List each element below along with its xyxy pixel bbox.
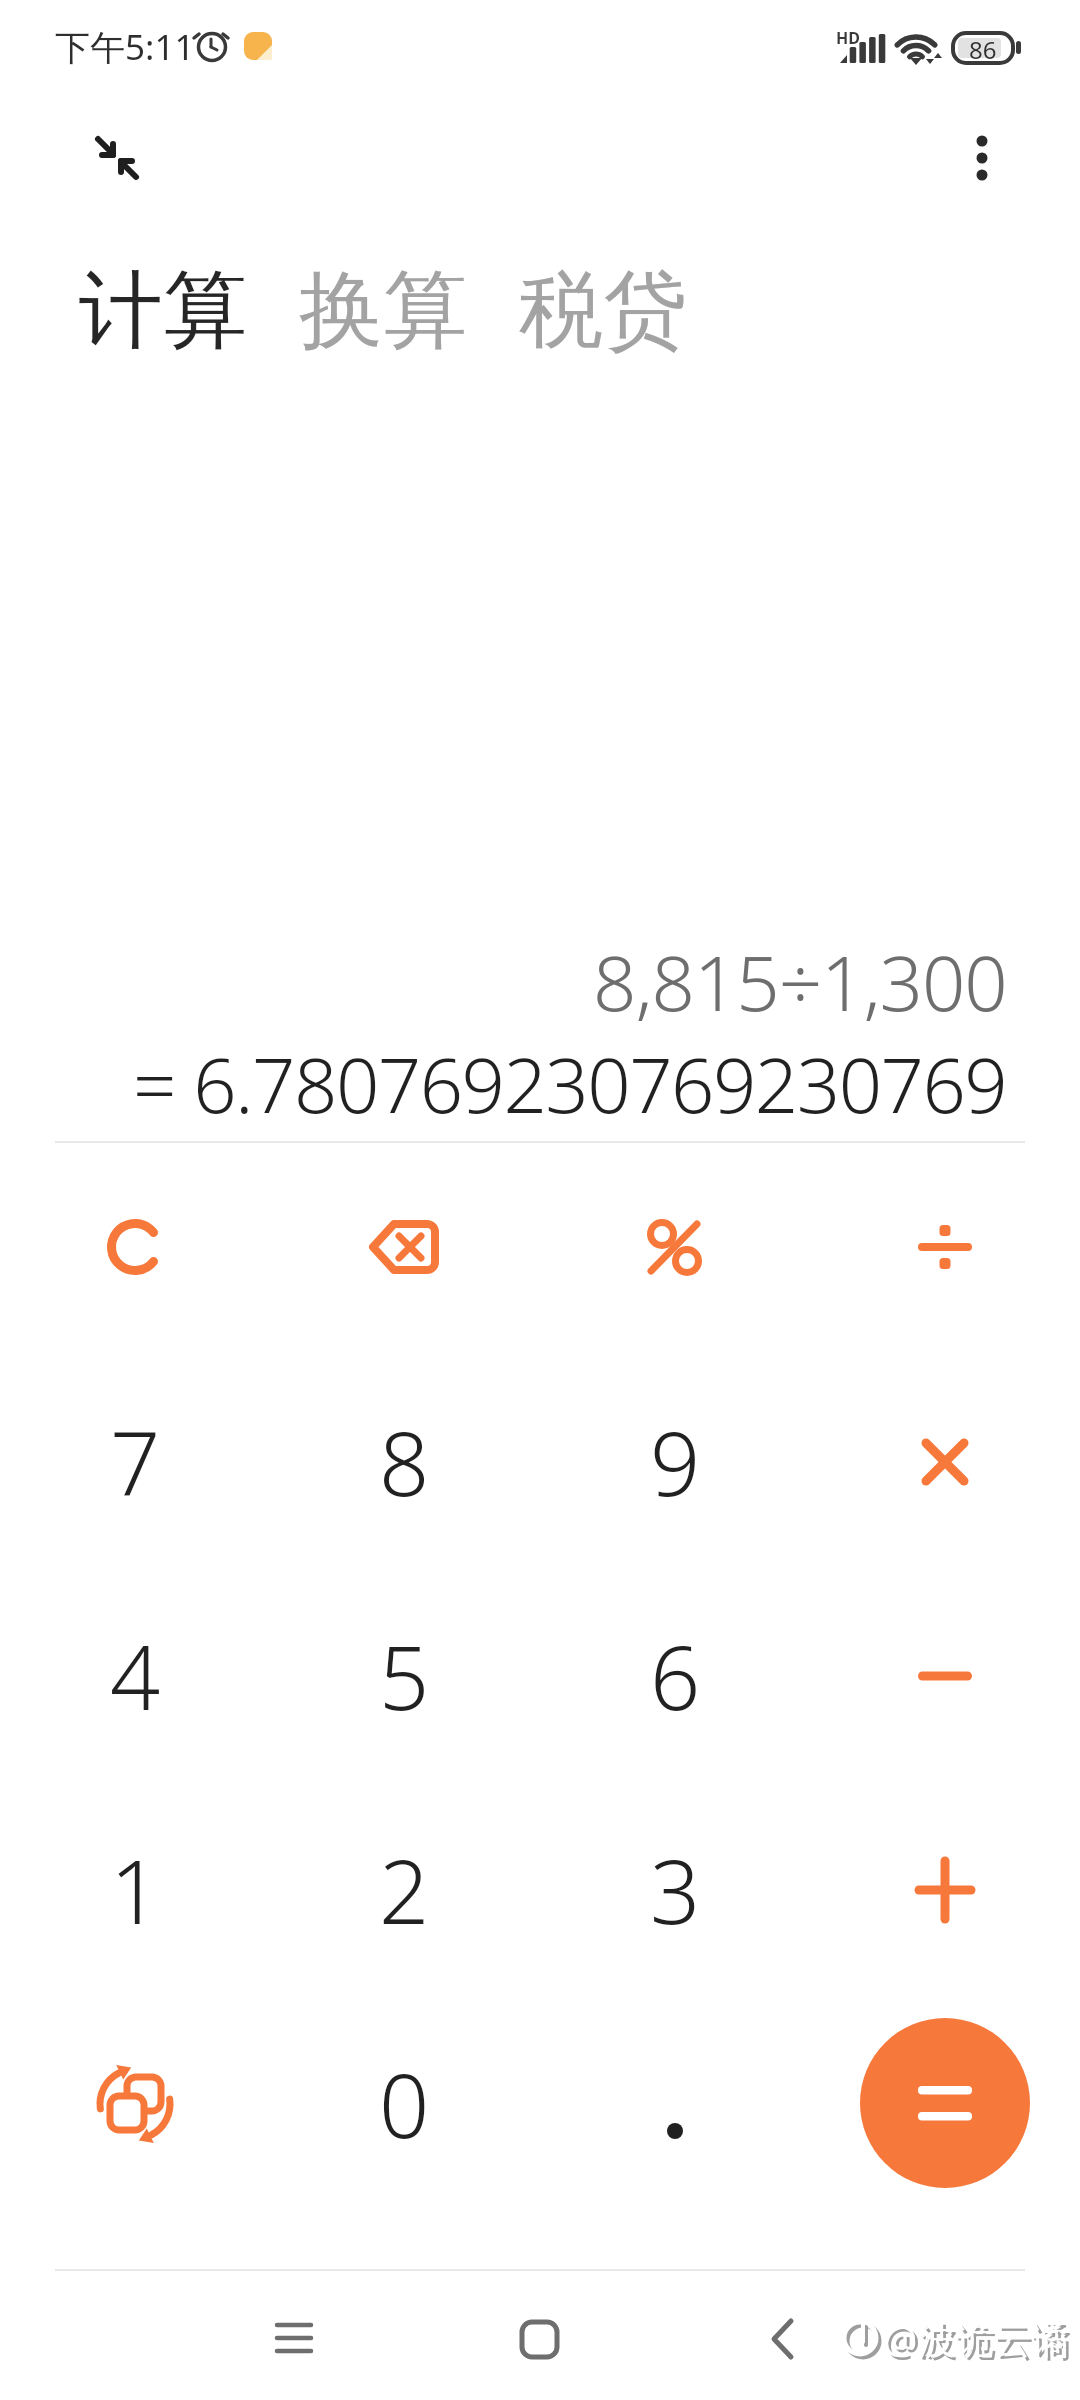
staticText: 0 <box>379 2044 430 2164</box>
button[interactable]: 1 <box>5 1760 265 2020</box>
staticText: 4 <box>110 1616 161 1736</box>
button[interactable] <box>314 1157 494 1337</box>
button[interactable] <box>855 1372 1035 1552</box>
staticText: @波诡云谲 <box>886 2315 1073 2367</box>
staticText: 7 <box>110 1402 161 1522</box>
button[interactable] <box>45 2014 225 2194</box>
staticText: HD <box>836 27 860 49</box>
staticText: 6 <box>650 1616 701 1736</box>
button[interactable]: 4 <box>5 1546 265 1806</box>
staticText: = 6.780769230769230769 <box>133 1032 1007 1130</box>
staticText: 5 <box>379 1616 430 1736</box>
staticText: 下午5:11 <box>55 23 195 69</box>
staticText: 2 <box>379 1830 430 1950</box>
button[interactable] <box>860 2018 1030 2188</box>
staticText: 8,815÷1,300 <box>593 930 1007 1026</box>
button[interactable]: 6 <box>545 1546 805 1806</box>
button[interactable]: 换算 <box>299 258 467 364</box>
button[interactable]: 计算 <box>79 258 247 364</box>
staticText: 税贷 <box>519 258 687 364</box>
button[interactable] <box>855 1800 1035 1980</box>
button[interactable] <box>585 2014 765 2194</box>
staticText: 计算 <box>79 258 247 364</box>
button[interactable]: 税贷 <box>519 258 687 364</box>
staticText: 换算 <box>299 258 467 364</box>
button[interactable]: 2 <box>274 1760 534 2020</box>
button[interactable] <box>855 1586 1035 1766</box>
button[interactable]: 0 <box>274 1974 534 2234</box>
button[interactable] <box>254 2298 334 2378</box>
staticText: @波诡云谲 <box>883 2312 1070 2364</box>
button[interactable] <box>500 2298 580 2378</box>
button[interactable]: 5 <box>274 1546 534 1806</box>
button[interactable]: 3 <box>545 1760 805 2020</box>
button[interactable] <box>952 128 1012 188</box>
button[interactable] <box>855 1157 1035 1337</box>
staticText: 9 <box>650 1402 701 1522</box>
button[interactable] <box>45 1157 225 1337</box>
button[interactable] <box>745 2298 825 2378</box>
staticText: 86 <box>969 33 997 62</box>
button[interactable] <box>85 125 149 189</box>
button[interactable]: 8 <box>274 1332 534 1592</box>
button[interactable] <box>585 1157 765 1337</box>
staticText: 3 <box>650 1830 701 1950</box>
staticText: 1 <box>110 1830 161 1950</box>
button[interactable]: 7 <box>5 1332 265 1592</box>
staticText: 8 <box>379 1402 430 1522</box>
button[interactable]: 9 <box>545 1332 805 1592</box>
